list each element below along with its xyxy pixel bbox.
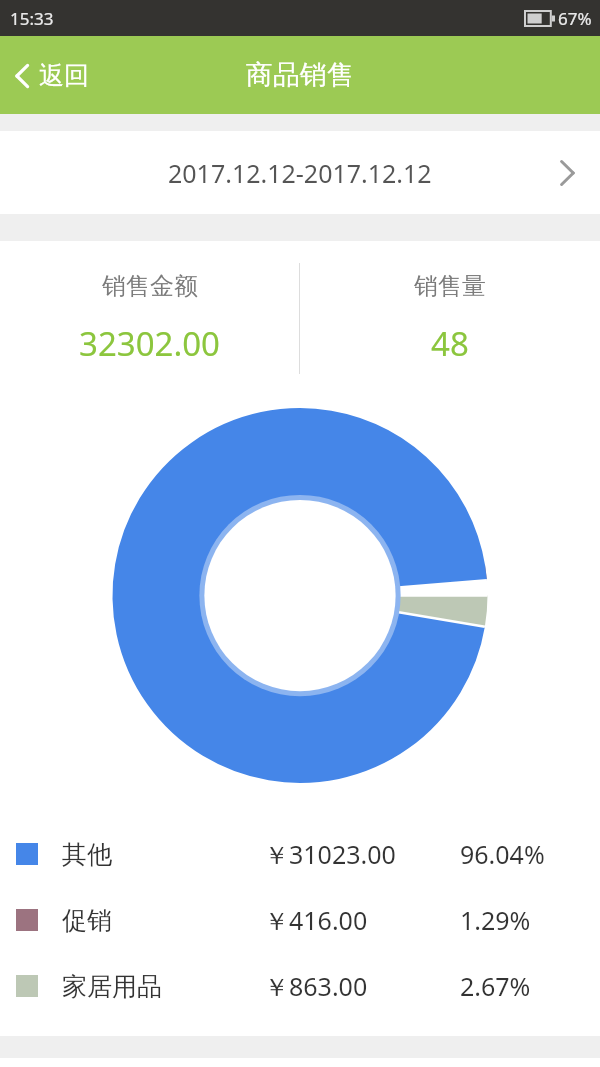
other: 选择日期 — [558, 157, 576, 189]
staticText: ￥863.00 — [264, 969, 368, 1003]
button[interactable]: 家居用品 — [0, 953, 600, 1019]
staticText: 15:33 — [10, 7, 54, 30]
staticText: 32302.00 — [79, 321, 220, 366]
staticText: 48 — [431, 321, 469, 366]
staticText: 2017.12.12-2017.12.12 — [168, 156, 432, 190]
button[interactable]: 2017.12.12-2017.12.12 — [0, 131, 600, 214]
staticText: 家居用品 — [62, 971, 162, 1002]
staticText: ￥416.00 — [264, 903, 368, 937]
button[interactable]: 销售金额 — [0, 241, 299, 396]
staticText: 其他 — [62, 839, 112, 870]
staticText: 2.67% — [460, 969, 531, 1003]
button[interactable]: 返回 — [0, 52, 105, 99]
staticText: 销售金额 — [102, 271, 198, 301]
button[interactable]: 其他 — [0, 821, 600, 887]
staticText: 销售量 — [414, 271, 486, 301]
staticText: ￥31023.00 — [264, 837, 396, 871]
button[interactable]: 促销 — [0, 887, 600, 953]
button[interactable]: 销售量 — [300, 241, 600, 396]
staticText: 67% — [558, 7, 592, 30]
staticText: 1.29% — [460, 903, 531, 937]
staticText: 商品销售 — [246, 58, 354, 92]
staticText: 96.04% — [460, 837, 545, 871]
staticText: 促销 — [62, 905, 112, 936]
staticText: 返回 — [39, 60, 89, 91]
